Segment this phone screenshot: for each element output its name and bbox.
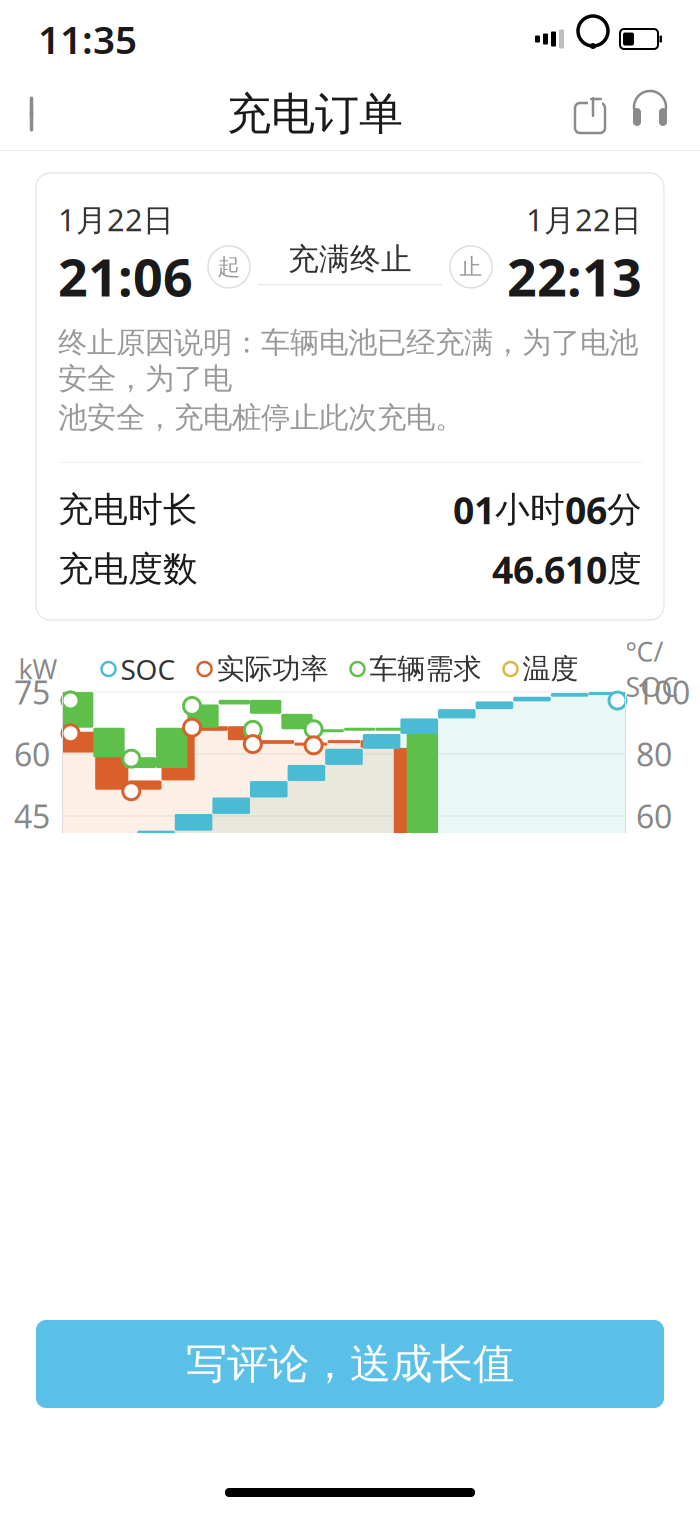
staticText: 1月22日 [526, 199, 642, 240]
staticText: 充电时长 [58, 488, 198, 531]
staticText: 21:06 [58, 242, 193, 311]
staticText: 22:13 [507, 242, 642, 311]
staticText: 01 [453, 485, 495, 534]
staticText: 度 [607, 548, 642, 590]
staticText: 小时 [495, 488, 565, 531]
staticText: 起 [217, 253, 240, 281]
staticText: kW [18, 651, 57, 687]
staticText: 止 [459, 253, 482, 281]
staticText: 06 [565, 485, 607, 534]
button[interactable]: 充电费用 [36, 1157, 664, 1356]
staticText: °C/SOC [625, 634, 678, 704]
staticText: 60 [636, 795, 672, 837]
staticText: 支付账户 [36, 1390, 200, 1441]
staticText: SOC [120, 650, 175, 688]
staticText: 车辆需求 [369, 652, 481, 686]
staticText: 充满终止 [288, 241, 412, 278]
staticText: 电费 40.41元 | 服务费 18.64元 | 费用详情 [84, 1257, 606, 1332]
staticText: 45 [14, 795, 50, 837]
staticText: 充电订单 [227, 87, 403, 141]
staticText: 终止原因说明：车辆电池已经充满，为了电池安全，为了电 [58, 325, 638, 397]
staticText: 100 [636, 671, 690, 713]
staticText: 11:35 [38, 13, 137, 65]
staticText: 分 [607, 488, 642, 531]
button[interactable]: 写评论，送成长值 [36, 1320, 664, 1408]
staticText: 46.610 [492, 544, 607, 594]
staticText: 充电度数 [58, 548, 198, 590]
staticText: 80 [636, 733, 672, 775]
staticText: 池安全，充电桩停止此次充电。 [58, 400, 464, 436]
staticText: 温度 [522, 652, 578, 686]
button[interactable]: 返回 [0, 78, 70, 150]
button[interactable]: 分享 [560, 78, 620, 150]
staticText: 实际功率 [216, 652, 328, 686]
staticText: 1月22日 [58, 199, 174, 240]
button[interactable]: 客服 [620, 78, 680, 150]
staticText: 75 [14, 671, 50, 713]
staticText: 写评论，送成长值 [186, 1339, 514, 1389]
staticText: 60 [14, 733, 50, 775]
